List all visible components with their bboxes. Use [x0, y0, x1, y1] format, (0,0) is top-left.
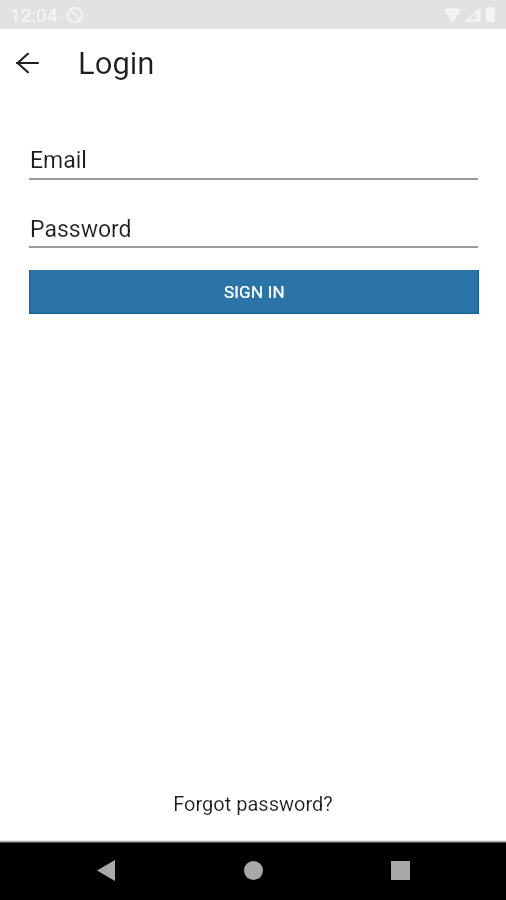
staticText: 12:04: [10, 4, 58, 26]
button[interactable]: Recent apps: [372, 842, 428, 898]
button[interactable]: Back: [78, 842, 134, 898]
button[interactable]: Home: [225, 842, 281, 898]
button[interactable]: Navigate up: [5, 40, 50, 85]
staticText: Email: [30, 147, 87, 174]
staticText: SIGN IN: [224, 282, 285, 302]
staticText: Login: [78, 45, 155, 81]
button[interactable]: SIGN IN: [29, 270, 479, 314]
staticText: Password: [30, 216, 132, 243]
button[interactable]: Password: [29, 217, 478, 248]
button[interactable]: Email: [29, 149, 478, 180]
button[interactable]: Forgot password?: [163, 788, 343, 819]
